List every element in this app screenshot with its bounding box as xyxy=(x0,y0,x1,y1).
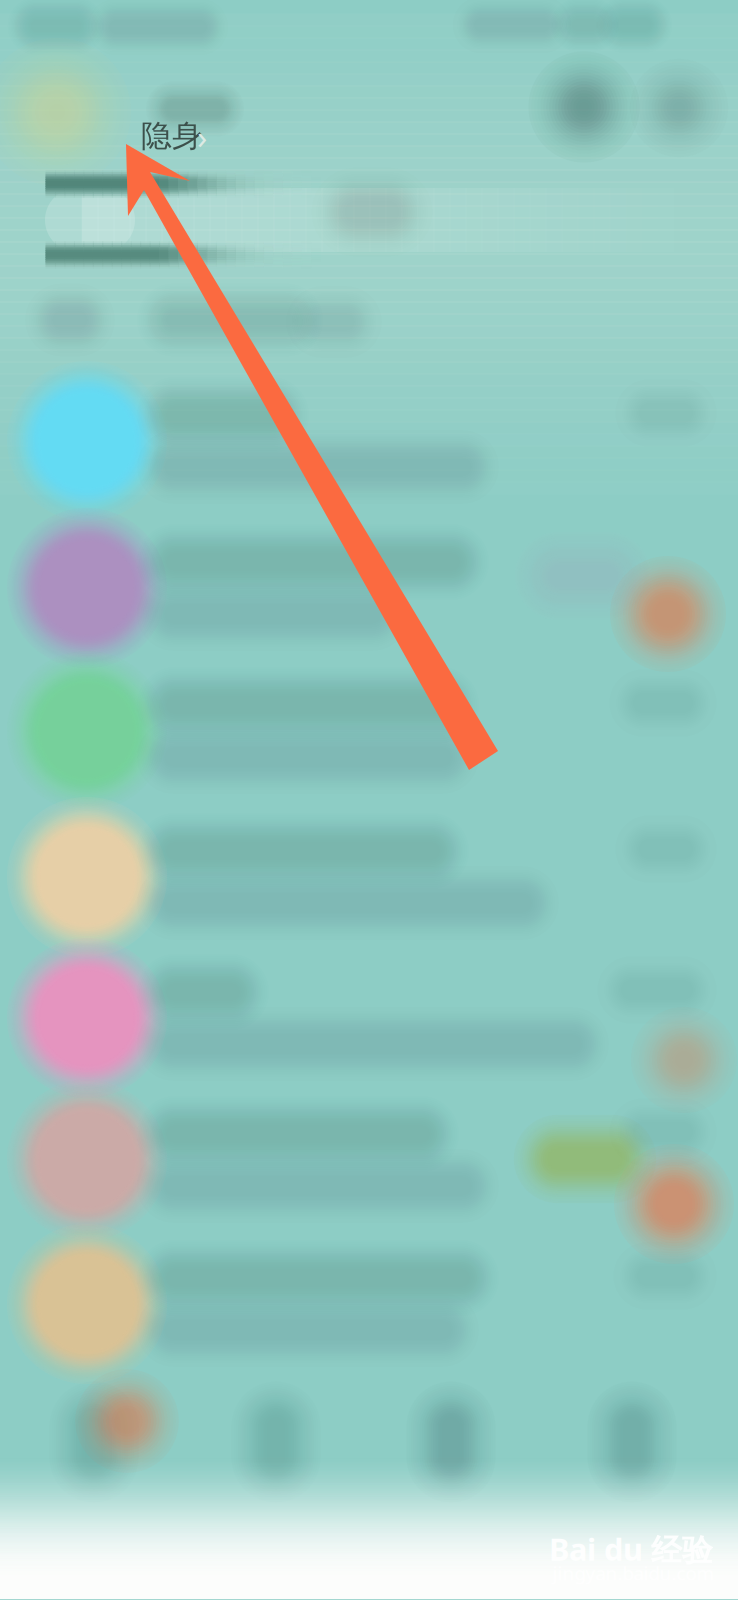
button[interactable] xyxy=(0,0,738,1600)
button[interactable]: More xyxy=(0,0,738,1600)
button[interactable]: Profile xyxy=(0,0,738,1600)
button[interactable]: Moments xyxy=(0,0,738,1600)
button[interactable] xyxy=(0,0,738,1600)
button[interactable]: Add friend xyxy=(0,0,738,1600)
staticText: Bai du 经验 xyxy=(549,1529,713,1569)
button[interactable] xyxy=(0,0,738,1600)
button[interactable]: Profile xyxy=(0,0,738,1600)
staticText: › xyxy=(197,114,207,158)
button[interactable] xyxy=(0,0,738,1600)
button[interactable]: 隐身 xyxy=(0,0,738,1600)
button[interactable]: Contacts xyxy=(0,0,738,1600)
button[interactable]: Messages xyxy=(0,0,738,1600)
button[interactable] xyxy=(0,0,738,1600)
button[interactable] xyxy=(0,0,738,1600)
button[interactable] xyxy=(0,0,738,1600)
button[interactable]: Search xyxy=(0,0,738,1600)
staticText: 隐身 xyxy=(141,117,203,155)
